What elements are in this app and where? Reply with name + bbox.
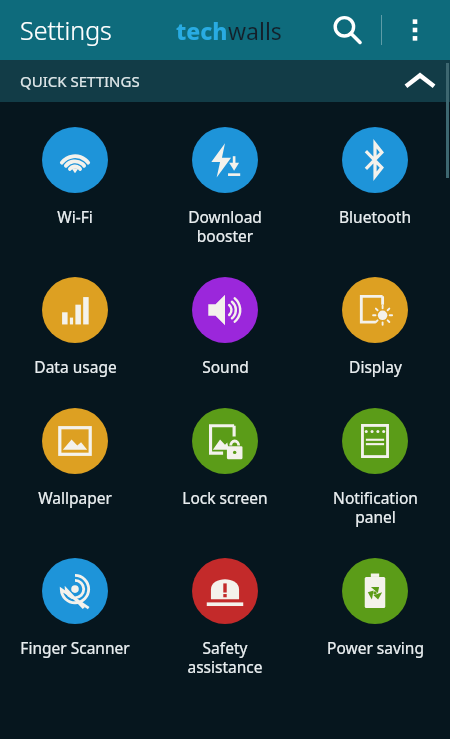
staticText: Data usage <box>34 356 117 377</box>
button[interactable]: Lock screen <box>150 408 300 508</box>
button[interactable]: QUICK SETTINGS <box>0 60 450 102</box>
staticText: Settings <box>20 13 112 47</box>
button[interactable]: Sound <box>150 277 300 377</box>
staticText: Download booster <box>188 206 262 246</box>
button[interactable]: Search <box>326 10 366 50</box>
button[interactable]: Display <box>300 277 450 377</box>
button[interactable]: Notification panel <box>300 408 450 527</box>
button[interactable]: Download booster <box>150 127 300 246</box>
staticText: Finger Scanner <box>20 637 130 658</box>
staticText: Lock screen <box>182 487 268 508</box>
staticText: QUICK SETTINGS <box>20 71 140 91</box>
staticText: Power saving <box>327 637 424 658</box>
button[interactable]: More options <box>396 11 434 49</box>
staticText: Sound <box>202 356 249 377</box>
staticText: tech <box>176 15 228 46</box>
staticText: Display <box>349 356 402 377</box>
button[interactable]: Wi-Fi <box>0 127 150 227</box>
button[interactable]: Safety assistance <box>150 558 300 677</box>
button[interactable]: Data usage <box>0 277 150 377</box>
button[interactable]: Wallpaper <box>0 408 150 508</box>
button[interactable]: Finger Scanner <box>0 558 150 658</box>
button[interactable]: Power saving <box>300 558 450 658</box>
staticText: Notification panel <box>333 487 418 527</box>
staticText: Bluetooth <box>339 206 411 227</box>
staticText: Wi-Fi <box>57 206 93 227</box>
staticText: Wallpaper <box>38 487 112 508</box>
staticText: Safety assistance <box>187 637 263 677</box>
button[interactable]: Bluetooth <box>300 127 450 227</box>
staticText: walls <box>228 15 282 46</box>
